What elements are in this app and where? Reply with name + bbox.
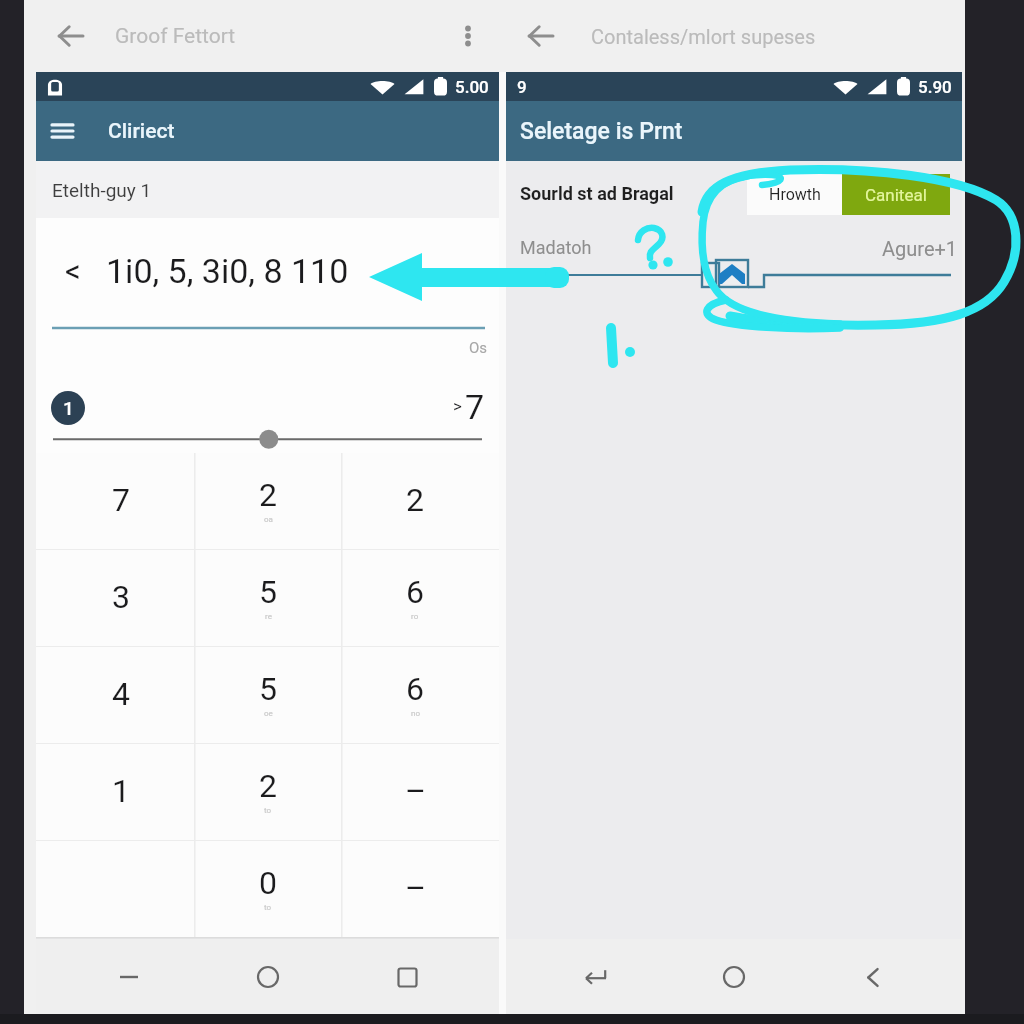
staticText: 5.00	[455, 77, 489, 97]
staticText: no	[411, 709, 420, 718]
button[interactable]: 2	[194, 453, 341, 549]
staticText: oa	[264, 515, 273, 524]
button[interactable]: 5	[194, 550, 341, 646]
button[interactable]: 1	[36, 744, 194, 840]
button[interactable]: 3	[36, 550, 194, 646]
staticText: Seletage iѕ Prnt	[520, 118, 683, 145]
button[interactable]: 1	[51, 391, 85, 425]
button[interactable]: More options	[444, 12, 492, 60]
button[interactable]: 2	[341, 453, 499, 549]
staticText: oe	[264, 709, 273, 718]
button[interactable]: 5	[194, 647, 341, 743]
button[interactable]: Back	[101, 949, 157, 1005]
staticText: –	[405, 772, 426, 810]
staticText: <	[65, 253, 81, 289]
staticText: 1	[63, 397, 74, 419]
staticText: 6	[406, 573, 424, 611]
button[interactable]: Previous	[844, 949, 900, 1005]
staticText: Hrowth	[769, 185, 821, 204]
staticText: 1i0, 5, 3i0, 8 110	[106, 251, 349, 291]
button[interactable]: Recents	[379, 949, 435, 1005]
staticText: 5.90	[918, 77, 952, 97]
button[interactable]: Back	[568, 949, 624, 1005]
staticText: 4	[112, 675, 130, 713]
staticText: –	[405, 869, 426, 907]
button[interactable]: Back	[517, 12, 565, 60]
button[interactable]: 6	[341, 550, 499, 646]
button[interactable]: 7	[36, 453, 194, 549]
staticText: 1	[112, 772, 130, 810]
staticText: 3	[112, 578, 130, 616]
staticText: Madatoh	[520, 237, 592, 258]
button[interactable]: 6	[341, 647, 499, 743]
button[interactable]: 0	[194, 841, 341, 937]
button[interactable]: Menu	[42, 111, 82, 151]
button[interactable]: Home	[706, 949, 762, 1005]
staticText: Sourld st ad Bragal	[520, 183, 674, 204]
staticText: 6	[406, 670, 424, 708]
staticText: 2	[259, 767, 277, 805]
staticText: re	[265, 612, 272, 621]
button[interactable]: –	[341, 744, 499, 840]
button[interactable]: Back	[47, 12, 95, 60]
button[interactable]: Hrowth	[747, 174, 842, 215]
staticText: Caniteal	[865, 185, 927, 205]
button[interactable]: 2	[194, 744, 341, 840]
staticText: Oѕ	[469, 339, 488, 357]
staticText: to	[264, 806, 272, 815]
staticText: 5	[259, 573, 277, 611]
staticText: Etelth-guy 1	[52, 179, 152, 201]
staticText: Contaless/mlort supeses	[591, 25, 816, 48]
staticText: 7	[112, 481, 130, 519]
staticText: 0	[259, 864, 277, 902]
staticText: to	[264, 903, 272, 912]
button[interactable]: Home	[240, 949, 296, 1005]
button[interactable]: 4	[36, 647, 194, 743]
staticText: 5	[259, 670, 277, 708]
staticText: 2	[259, 476, 277, 514]
button[interactable]: –	[341, 841, 499, 937]
staticText: 7	[465, 387, 485, 427]
staticText: Groof Fettort	[115, 24, 236, 49]
button[interactable]: Caniteal	[842, 174, 950, 215]
staticText: 9	[517, 77, 527, 97]
staticText: Aɡure+1	[882, 237, 958, 260]
staticText: 2	[406, 481, 424, 519]
staticText: ro	[411, 612, 419, 621]
staticText: Cliriect	[108, 119, 175, 144]
staticText: >	[453, 396, 462, 416]
